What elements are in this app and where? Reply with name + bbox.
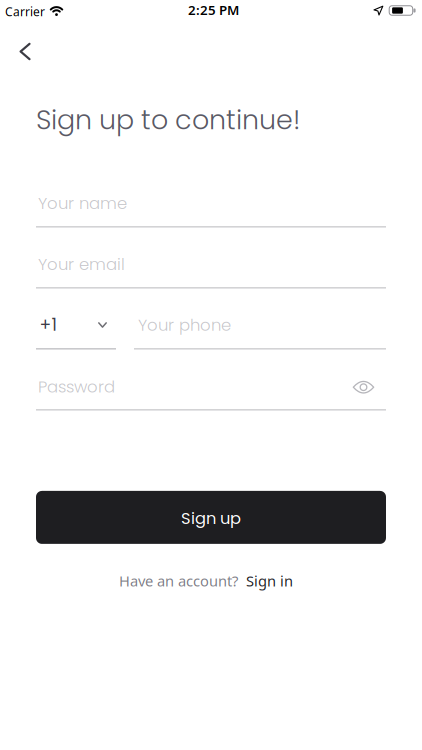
staticText: +1 — [39, 313, 56, 337]
button[interactable]: Sign up — [36, 491, 386, 544]
button[interactable]: Show password — [344, 373, 382, 402]
staticText: Your email — [38, 253, 125, 276]
button[interactable]: Sign in — [246, 571, 293, 591]
staticText: Have an account? — [119, 571, 238, 591]
staticText: Password — [38, 375, 115, 398]
staticText: Sign in — [246, 571, 293, 591]
staticText: Sign up to continue! — [36, 101, 300, 139]
staticText: Your phone — [138, 313, 231, 337]
button[interactable]: Country code +1 — [36, 300, 116, 350]
button[interactable]: Back — [5, 33, 44, 70]
staticText: Carrier — [5, 4, 45, 20]
staticText: 2:25 PM — [188, 1, 239, 19]
staticText: Sign up — [181, 507, 241, 530]
staticText: Your name — [38, 192, 127, 215]
